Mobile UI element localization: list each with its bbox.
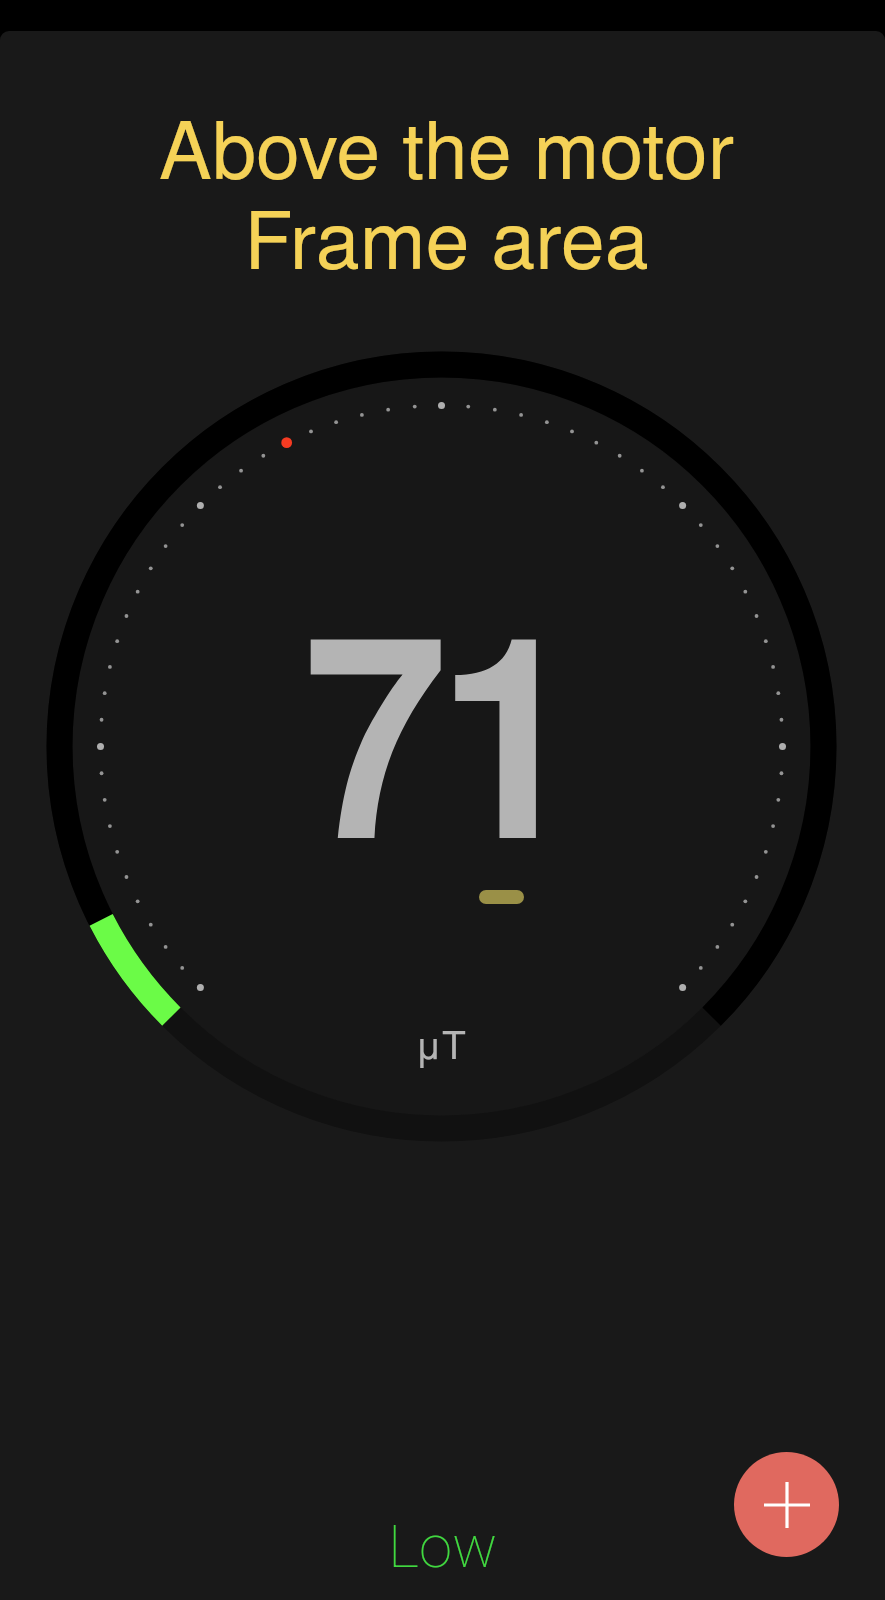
staticText: Frame area bbox=[4, 178, 885, 291]
staticText: μT bbox=[415, 1014, 466, 1070]
staticText: Above the motor bbox=[4, 88, 885, 201]
button[interactable]: Add measurement bbox=[734, 1452, 839, 1557]
staticText: Low bbox=[388, 1511, 498, 1581]
button[interactable]: Low bbox=[343, 1511, 543, 1581]
staticText: 71 bbox=[303, 523, 572, 863]
